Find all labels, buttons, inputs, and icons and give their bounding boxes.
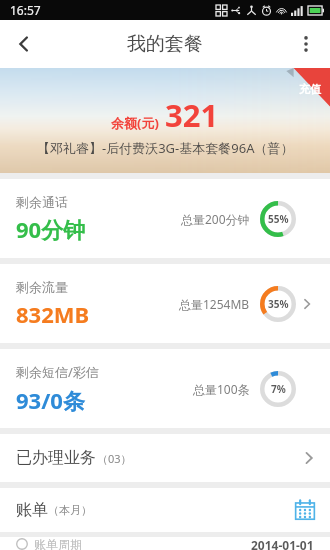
- button[interactable]: 账单周期: [0, 537, 330, 550]
- button[interactable]: 账单: [0, 488, 330, 532]
- staticText: 总量1254MB: [179, 296, 250, 312]
- staticText: 余额(元): [111, 114, 159, 132]
- staticText: 35%: [268, 297, 289, 311]
- staticText: 我的套餐: [127, 32, 203, 56]
- staticText: 93/0条: [16, 385, 85, 415]
- button[interactable]: 充值: [278, 68, 330, 120]
- staticText: 剩余流量: [16, 279, 68, 295]
- staticText: 充值: [299, 82, 321, 96]
- staticText: 剩余通话: [16, 194, 68, 210]
- staticText: （03）: [97, 451, 132, 466]
- staticText: 2014-01-01: [251, 537, 314, 550]
- staticText: 总量100条: [193, 381, 250, 397]
- staticText: （本月）: [48, 503, 92, 517]
- staticText: 90分钟: [16, 214, 86, 244]
- staticText: 【邓礼睿】-后付费沃3G-基本套餐96A（普）: [37, 139, 294, 157]
- staticText: 账单周期: [34, 537, 82, 550]
- other: Calendar: [294, 499, 316, 521]
- staticText: 总量200分钟: [181, 211, 250, 227]
- staticText: 55%: [268, 212, 289, 226]
- button[interactable]: 剩余通话: [0, 179, 330, 258]
- button[interactable]: 剩余流量: [0, 264, 330, 343]
- staticText: 832MB: [16, 299, 90, 329]
- staticText: 7%: [271, 382, 286, 396]
- staticText: 账单: [16, 500, 48, 520]
- button[interactable]: 剩余短信/彩信: [0, 349, 330, 428]
- button[interactable]: Back: [0, 20, 48, 68]
- staticText: 16:57: [10, 2, 41, 18]
- staticText: 剩余短信/彩信: [16, 363, 99, 381]
- staticText: 已办理业务: [16, 448, 96, 468]
- button[interactable]: More options: [282, 20, 330, 68]
- button[interactable]: 已办理业务: [0, 434, 330, 482]
- staticText: 321: [165, 94, 219, 136]
